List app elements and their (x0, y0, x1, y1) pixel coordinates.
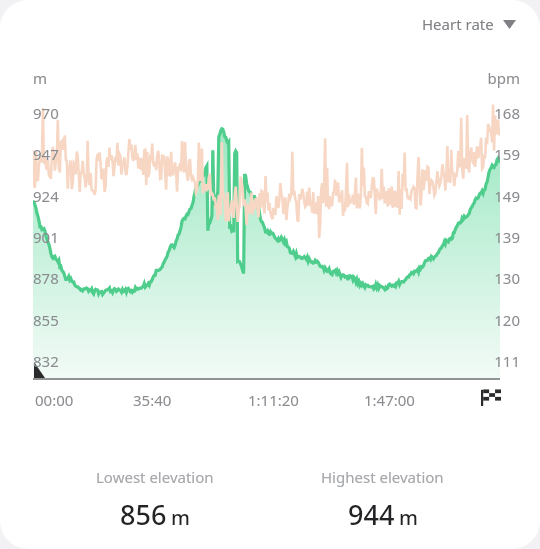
staticText: m (33, 68, 48, 88)
staticText: 856 (120, 496, 167, 533)
staticText: 878 (33, 268, 59, 288)
staticText: m (171, 504, 190, 531)
staticText: Heart rate (422, 14, 494, 34)
staticText: 00:00 (35, 390, 74, 410)
staticText: 832 (33, 351, 59, 371)
staticText: 944 (348, 496, 395, 533)
staticText: 970 (33, 103, 59, 123)
staticText: 159 (480, 144, 520, 164)
staticText: 1:47:00 (364, 390, 415, 410)
button[interactable]: Heart rate (418, 10, 520, 38)
staticText: 139 (480, 227, 520, 247)
staticText: 111 (480, 351, 520, 371)
staticText: bpm (480, 68, 520, 88)
staticText: 130 (480, 268, 520, 288)
staticText: 901 (33, 227, 59, 247)
staticText: 149 (480, 186, 520, 206)
staticText: Lowest elevation (96, 467, 214, 487)
button[interactable]: Lowest elevation (86, 465, 224, 535)
staticText: 1:11:20 (248, 390, 299, 410)
staticText: m (399, 504, 418, 531)
other: Change metric (503, 20, 516, 29)
staticText: 168 (480, 103, 520, 123)
staticText: 855 (33, 310, 59, 330)
button[interactable]: Highest elevation (311, 465, 454, 535)
staticText: Highest elevation (321, 467, 444, 487)
other: Finish (481, 388, 501, 406)
staticText: 924 (33, 186, 59, 206)
staticText: 947 (33, 144, 59, 164)
staticText: 35:40 (133, 390, 172, 410)
staticText: 120 (480, 310, 520, 330)
